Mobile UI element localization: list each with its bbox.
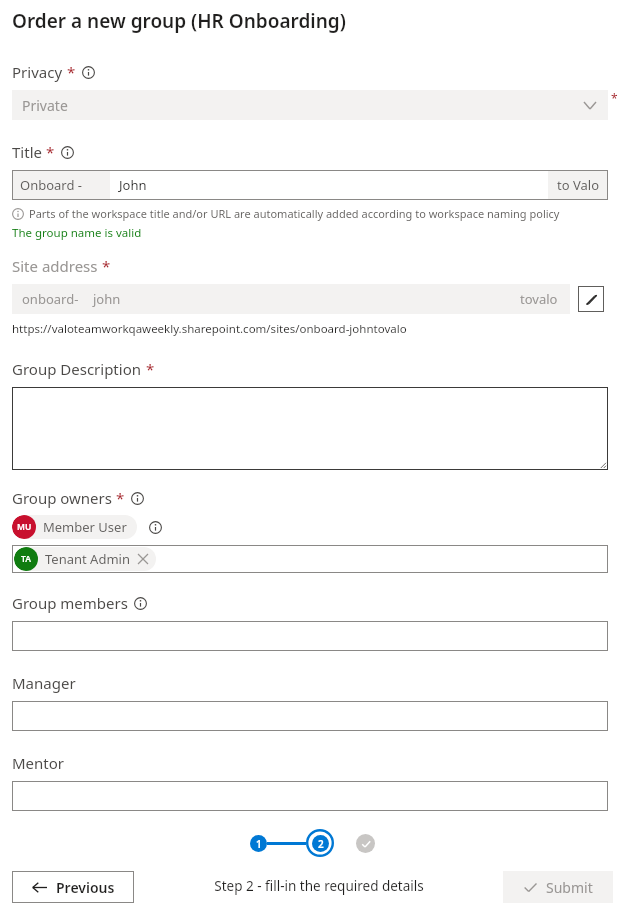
staticText: john: [93, 290, 121, 308]
staticText: onboard-: [22, 290, 79, 308]
staticText: Group Description: [12, 359, 142, 379]
staticText: Previous: [56, 878, 115, 897]
staticText: 1: [256, 837, 262, 851]
button[interactable]: [12, 387, 608, 470]
staticText: *: [611, 90, 618, 106]
button[interactable]: Remove Tenant Admin: [138, 554, 148, 564]
button[interactable]: 2: [312, 835, 329, 852]
button[interactable]: MU: [12, 515, 137, 539]
staticText: Mentor: [12, 753, 65, 773]
staticText: *: [46, 142, 55, 162]
staticText: *: [146, 359, 155, 379]
button[interactable]: Step 3 complete: [356, 834, 375, 853]
button[interactable]: Previous: [12, 871, 134, 903]
staticText: The group name is valid: [12, 225, 142, 241]
button[interactable]: Onboard -: [12, 170, 608, 200]
staticText: Order a new group (HR Onboarding): [12, 8, 346, 34]
staticText: https://valoteamworkqaweekly.sharepoint.…: [12, 321, 407, 337]
staticText: Member User: [43, 518, 127, 536]
staticText: Tenant Admin: [45, 550, 130, 568]
staticText: Title: [12, 142, 42, 162]
staticText: John: [119, 176, 147, 194]
staticText: Site address: [12, 256, 98, 276]
button[interactable]: 1: [250, 835, 267, 852]
staticText: Submit: [546, 878, 593, 897]
staticText: Privacy: [12, 62, 63, 82]
staticText: 2: [318, 837, 324, 851]
staticText: Private: [22, 96, 68, 115]
staticText: tovalo: [520, 290, 558, 308]
button[interactable]: onboard-: [12, 284, 570, 314]
staticText: MU: [17, 521, 32, 533]
staticText: Group members: [12, 593, 128, 613]
staticText: *: [67, 62, 76, 82]
button[interactable]: TA: [12, 545, 608, 573]
staticText: *: [102, 256, 111, 276]
staticText: to Valo: [557, 176, 599, 194]
staticText: *: [116, 488, 125, 508]
staticText: Manager: [12, 673, 76, 693]
button[interactable]: [12, 621, 608, 651]
button[interactable]: Edit site address: [578, 286, 604, 312]
staticText: Step 2 - fill-in the required details: [214, 877, 424, 895]
staticText: Group owners: [12, 488, 112, 508]
button[interactable]: Submit: [503, 871, 613, 903]
button[interactable]: [12, 701, 608, 731]
button[interactable]: [12, 781, 608, 811]
staticText: Parts of the workspace title and/or URL …: [29, 206, 560, 221]
staticText: Onboard -: [20, 176, 83, 194]
staticText: TA: [21, 553, 31, 565]
button[interactable]: Private: [12, 90, 608, 120]
